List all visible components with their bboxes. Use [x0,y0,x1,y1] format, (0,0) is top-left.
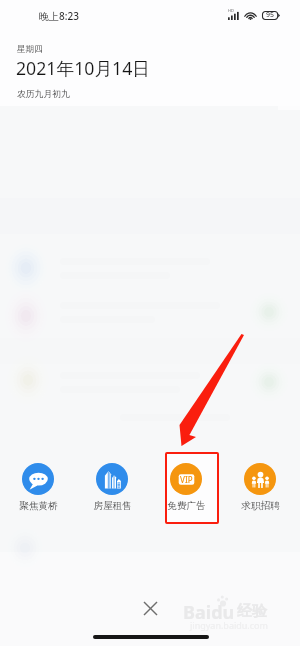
staticText: 求职招聘 [241,500,280,512]
button[interactable]: VIP [159,460,213,512]
staticText: 聚焦黄桥 [19,500,58,512]
button[interactable]: Close [134,592,166,624]
button[interactable]: 求职招聘 [233,460,287,512]
staticText: 经验 [237,602,267,621]
staticText: 房屋租售 [93,500,132,512]
staticText: 2021年10月14日 [16,56,151,80]
staticText: Baidu [183,600,235,625]
staticText: VIP [180,474,193,485]
staticText: HD [228,8,234,13]
staticText: 农历九月初九 [17,89,70,100]
staticText: jingyan.baidu.com [190,619,268,631]
staticText: 免费广告 [167,500,206,512]
staticText: 星期四 [17,44,43,55]
button[interactable]: 房屋租售 [85,460,139,512]
staticText: 95 [266,10,275,20]
staticText: 晚上8:23 [39,9,79,23]
button[interactable]: 聚焦黄桥 [11,460,65,512]
